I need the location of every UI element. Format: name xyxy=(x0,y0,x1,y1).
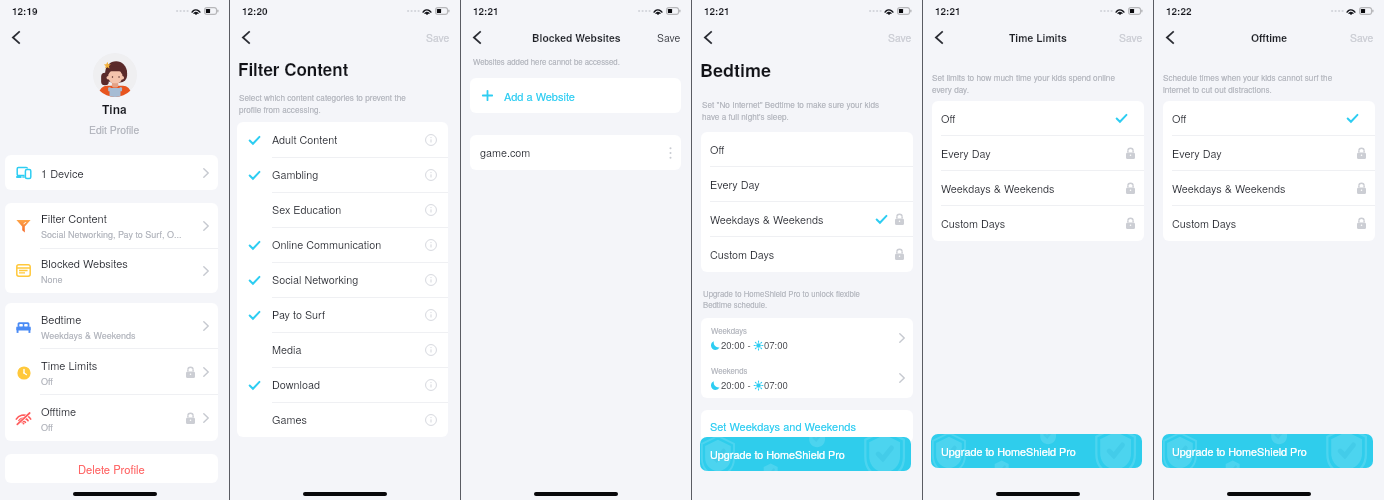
staticText: Weekdays & Weekends xyxy=(710,212,824,227)
button[interactable]: Every Day xyxy=(932,136,1144,171)
button[interactable]: Back xyxy=(927,25,951,49)
staticText: 20:00 - xyxy=(721,378,754,392)
staticText: Weekdays xyxy=(711,325,747,336)
button[interactable]: Upgrade to HomeShield Pro xyxy=(700,437,911,471)
staticText: 12:21 xyxy=(473,4,499,18)
button[interactable]: Off xyxy=(932,101,1144,136)
button[interactable]: Social Networking xyxy=(237,262,448,297)
button[interactable]: Every Day xyxy=(701,167,913,202)
staticText: Time Limits xyxy=(41,357,98,373)
other: More options xyxy=(669,147,672,159)
button[interactable]: Upgrade to HomeShield Pro xyxy=(1162,434,1373,468)
staticText: 07:00 xyxy=(764,378,788,392)
button[interactable]: Add a Website xyxy=(470,78,681,113)
button[interactable]: Save xyxy=(1109,25,1153,50)
staticText: Filter Content xyxy=(238,57,349,81)
staticText: Media xyxy=(272,342,302,357)
staticText: Off xyxy=(710,142,725,157)
button[interactable]: Sex Education xyxy=(237,192,448,227)
button[interactable]: Offtime xyxy=(5,395,218,441)
button[interactable]: Every Day xyxy=(1163,136,1375,171)
staticText: Time Limits xyxy=(1009,30,1067,45)
button[interactable]: Weekends xyxy=(701,358,913,398)
button[interactable]: Back xyxy=(696,25,720,49)
staticText: Every Day xyxy=(1172,146,1222,161)
button[interactable]: Upgrade to HomeShield Pro xyxy=(931,434,1142,468)
staticText: Every Day xyxy=(941,146,991,161)
staticText: Custom Days xyxy=(941,216,1006,231)
button[interactable]: Off xyxy=(1163,101,1375,136)
button[interactable]: Download xyxy=(237,367,448,402)
button[interactable]: Custom Days xyxy=(701,237,913,272)
button[interactable]: Save xyxy=(647,25,691,50)
staticText: Set Weekdays and Weekends xyxy=(710,418,856,434)
staticText: 12:21 xyxy=(935,4,961,18)
button[interactable]: Save xyxy=(878,25,922,50)
staticText: Delete Profile xyxy=(78,461,145,477)
staticText: Websites added here cannot be accessed. xyxy=(473,56,620,67)
staticText: Adult Content xyxy=(272,132,338,147)
button[interactable]: Weekdays & Weekends xyxy=(932,171,1144,206)
staticText: Download xyxy=(272,377,320,392)
staticText: Sex Education xyxy=(272,202,342,217)
button[interactable]: game.com xyxy=(470,135,681,170)
staticText: Off xyxy=(1172,111,1187,126)
staticText: Custom Days xyxy=(710,247,775,262)
staticText: Add a Website xyxy=(504,88,575,104)
button[interactable]: Back xyxy=(1158,25,1182,49)
staticText: Upgrade to HomeShield Pro xyxy=(1172,444,1307,459)
button[interactable]: Off xyxy=(701,132,913,167)
staticText: 1 Device xyxy=(41,165,84,181)
staticText: game.com xyxy=(480,145,531,160)
button[interactable]: Custom Days xyxy=(932,206,1144,241)
button[interactable]: Adult Content xyxy=(237,122,448,157)
button[interactable]: Delete Profile xyxy=(5,454,218,483)
button[interactable]: Online Communication xyxy=(237,227,448,262)
staticText: Set "No Internet" Bedtime to make sure y… xyxy=(702,99,896,123)
button[interactable]: Back xyxy=(4,25,28,49)
staticText: Blocked Websites xyxy=(532,30,621,45)
button[interactable]: Edit Profile xyxy=(84,121,145,138)
staticText: 12:22 xyxy=(1166,4,1192,18)
staticText: Schedule times when your kids cannot sur… xyxy=(1163,72,1353,96)
button[interactable]: Save xyxy=(1340,25,1384,50)
button[interactable]: Media xyxy=(237,332,448,367)
button[interactable]: 1 Device xyxy=(5,155,218,190)
button[interactable]: Blocked Websites xyxy=(5,248,218,293)
button[interactable]: Save xyxy=(416,25,460,50)
staticText: Weekends xyxy=(711,365,748,376)
button[interactable]: Time Limits xyxy=(5,349,218,395)
staticText: 12:19 xyxy=(12,4,38,18)
button[interactable]: Games xyxy=(237,402,448,437)
staticText: Off xyxy=(41,375,53,388)
staticText: Save xyxy=(426,30,450,45)
button[interactable]: Set Weekdays and Weekends xyxy=(701,410,913,443)
staticText: Weekdays & Weekends xyxy=(941,181,1055,196)
staticText: Filter Content xyxy=(41,210,107,226)
staticText: Tina xyxy=(102,100,127,117)
button[interactable]: Weekdays & Weekends xyxy=(1163,171,1375,206)
button[interactable]: Custom Days xyxy=(1163,206,1375,241)
staticText: Offtime xyxy=(41,403,77,419)
button[interactable]: Gambling xyxy=(237,157,448,192)
staticText: Save xyxy=(888,30,912,45)
staticText: Save xyxy=(1119,30,1143,45)
button[interactable]: Filter Content xyxy=(5,203,218,248)
button[interactable]: Weekdays xyxy=(701,318,913,358)
staticText: 07:00 xyxy=(764,338,788,352)
staticText: Weekdays & Weekends xyxy=(1172,181,1286,196)
staticText: 20:00 - xyxy=(721,338,754,352)
staticText: Custom Days xyxy=(1172,216,1237,231)
button[interactable]: Back xyxy=(465,25,489,49)
button[interactable]: Pay to Surf xyxy=(237,297,448,332)
staticText: Upgrade to HomeShield Pro xyxy=(710,447,845,462)
button[interactable]: Back xyxy=(234,25,258,49)
staticText: Pay to Surf xyxy=(272,307,325,322)
button[interactable]: Bedtime xyxy=(5,303,218,349)
button[interactable]: Weekdays & Weekends xyxy=(701,202,913,237)
staticText: Edit Profile xyxy=(89,122,140,137)
staticText: Games xyxy=(272,412,307,427)
staticText: Offtime xyxy=(1251,30,1288,45)
staticText: Save xyxy=(1350,30,1374,45)
staticText: None xyxy=(41,273,63,286)
